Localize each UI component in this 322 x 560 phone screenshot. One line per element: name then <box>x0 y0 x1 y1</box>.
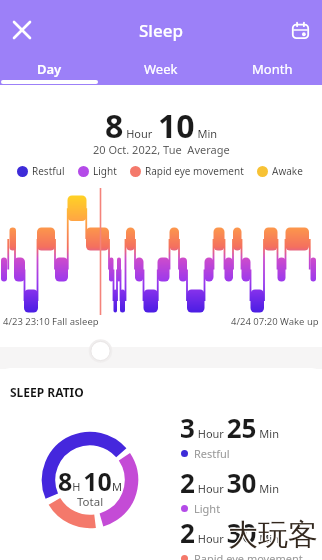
button[interactable]: Week <box>99 52 223 85</box>
staticText: Day <box>37 60 62 78</box>
staticText: Light <box>93 164 117 178</box>
staticText: Awake <box>272 164 303 178</box>
staticText: 大玩客 <box>229 516 319 554</box>
staticText: 大玩客 <box>228 515 318 553</box>
staticText: Restful <box>194 446 230 461</box>
button[interactable]: Day <box>0 52 99 85</box>
staticText: Light <box>194 501 221 516</box>
staticText: 4/24 07:20 Wake up <box>231 315 319 328</box>
button[interactable] <box>278 8 322 52</box>
staticText: 8 Hour 10 Min <box>105 104 218 148</box>
staticText: 2 Hour 30 Min <box>180 515 279 550</box>
staticText: Restful <box>32 164 65 178</box>
staticText: SLEEP RATIO <box>10 384 84 400</box>
staticText: 大玩客 <box>227 516 317 554</box>
button[interactable]: Month <box>223 52 322 85</box>
staticText: 20 Oct. 2022, Tue Average <box>93 142 230 157</box>
staticText: 8H 10M <box>58 464 122 498</box>
staticText: Sleep <box>139 19 183 42</box>
staticText: Month <box>252 60 293 78</box>
button[interactable] <box>0 8 44 52</box>
staticText: Total <box>77 494 104 510</box>
staticText: 大玩客 <box>228 517 318 555</box>
staticText: 大玩客 <box>228 516 318 554</box>
staticText: Week <box>144 60 178 78</box>
staticText: Rapid eye movement <box>145 164 244 178</box>
staticText: 4/23 23:10 Fall asleep <box>3 315 99 328</box>
staticText: 2 Hour 30 Min <box>180 465 279 500</box>
staticText: Rapid eye movement <box>194 551 303 560</box>
staticText: 3 Hour 25 Min <box>180 410 279 445</box>
